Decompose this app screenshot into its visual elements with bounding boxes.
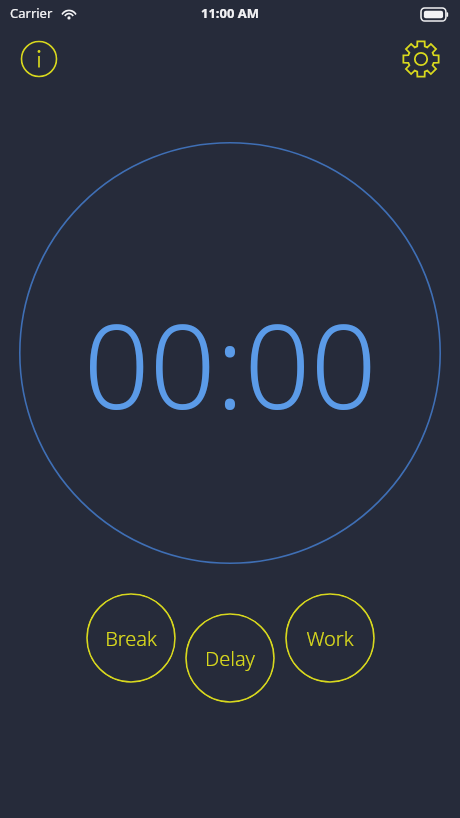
staticText: Carrier <box>10 4 53 22</box>
staticText: 11:00 AM <box>201 4 260 22</box>
staticText: 00:00 <box>83 285 377 410</box>
button[interactable]: Work <box>285 593 375 683</box>
staticText: Delay <box>205 645 255 672</box>
button[interactable]: Delay <box>185 613 275 703</box>
staticText: Break <box>105 625 157 652</box>
button[interactable]: Settings <box>399 37 443 81</box>
button[interactable]: Break <box>86 593 176 683</box>
staticText: Work <box>306 625 354 652</box>
button[interactable]: Info <box>17 37 61 81</box>
